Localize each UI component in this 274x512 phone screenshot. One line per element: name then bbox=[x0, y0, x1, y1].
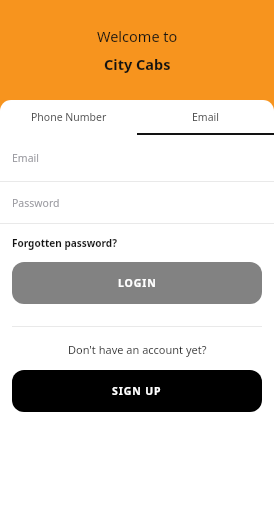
staticText: Forgotten password? bbox=[12, 236, 117, 250]
button[interactable]: SIGN UP bbox=[12, 370, 262, 412]
staticText: Don't have an account yet? bbox=[68, 342, 207, 357]
button[interactable]: Email bbox=[137, 100, 274, 133]
staticText: SIGN UP bbox=[112, 384, 162, 398]
button[interactable]: Phone Number bbox=[0, 100, 137, 133]
staticText: Email bbox=[12, 151, 39, 165]
button[interactable]: Forgotten password? bbox=[0, 224, 274, 262]
button[interactable]: LOGIN bbox=[12, 262, 262, 304]
button[interactable]: Email bbox=[0, 135, 274, 181]
staticText: Phone Number bbox=[31, 110, 107, 124]
staticText: City Cabs bbox=[104, 54, 171, 74]
staticText: LOGIN bbox=[118, 276, 157, 290]
button[interactable]: Password bbox=[0, 182, 274, 223]
staticText: Welcome to bbox=[97, 26, 178, 46]
staticText: Email bbox=[192, 110, 219, 124]
staticText: Password bbox=[12, 196, 60, 210]
